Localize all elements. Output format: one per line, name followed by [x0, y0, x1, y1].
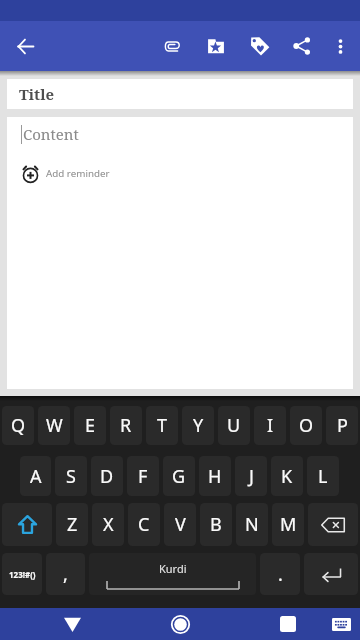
button[interactable]: Symbols — [2, 553, 42, 595]
staticText: K — [281, 464, 293, 489]
button[interactable]: C — [128, 503, 160, 546]
staticText: M — [280, 512, 297, 537]
button[interactable]: Share — [282, 21, 321, 71]
button[interactable]: Shift — [2, 503, 52, 546]
button[interactable]: More options — [321, 21, 360, 71]
staticText: W — [46, 413, 63, 438]
staticText: R — [120, 413, 132, 438]
staticText: S — [66, 464, 76, 489]
button[interactable]: F — [127, 456, 159, 496]
staticText: I — [267, 413, 274, 438]
staticText: F — [138, 464, 148, 489]
staticText: O — [299, 413, 314, 438]
staticText: A — [30, 464, 42, 489]
staticText: G — [172, 464, 186, 489]
button[interactable]: A — [20, 456, 51, 496]
staticText: D — [100, 464, 114, 489]
button[interactable]: L — [307, 456, 339, 496]
staticText: . — [278, 562, 283, 587]
staticText: N — [245, 512, 259, 537]
staticText: Add reminder — [46, 167, 110, 180]
staticText: X — [103, 512, 114, 537]
button[interactable]: K — [271, 456, 303, 496]
staticText: V — [175, 512, 186, 537]
button[interactable]: Content — [7, 117, 353, 389]
staticText: , — [63, 562, 68, 587]
staticText: C — [138, 512, 150, 537]
button[interactable]: E — [74, 406, 106, 445]
staticText: Kurdi — [159, 561, 187, 576]
staticText: Z — [67, 512, 78, 537]
button[interactable]: G — [163, 456, 195, 496]
button[interactable]: Kurdi — [89, 553, 256, 595]
button[interactable]: Hide keyboard — [45, 608, 99, 640]
button[interactable]: Move to folder — [194, 21, 238, 71]
button[interactable]: V — [164, 503, 196, 546]
button[interactable]: S — [55, 456, 87, 496]
button[interactable]: Recents — [261, 608, 315, 640]
button[interactable]: I — [254, 406, 286, 445]
button[interactable]: J — [235, 456, 267, 496]
staticText: P — [337, 413, 348, 438]
button[interactable]: , — [46, 553, 85, 595]
staticText: B — [210, 512, 222, 537]
staticText: L — [318, 464, 328, 489]
button[interactable]: Switch keyboard — [323, 608, 360, 640]
button[interactable]: Add reminder — [7, 162, 126, 185]
button[interactable]: Z — [56, 503, 88, 546]
button[interactable]: N — [236, 503, 268, 546]
button[interactable]: Q — [2, 406, 34, 445]
button[interactable]: T — [146, 406, 178, 445]
button[interactable]: H — [199, 456, 231, 496]
button[interactable]: Y — [182, 406, 214, 445]
staticText: H — [208, 464, 222, 489]
button[interactable]: R — [110, 406, 142, 445]
button[interactable]: Attach — [150, 21, 194, 71]
staticText: J — [249, 464, 254, 489]
staticText: Y — [193, 413, 204, 438]
button[interactable]: Home — [153, 608, 207, 640]
button[interactable]: P — [326, 406, 358, 445]
staticText: 123!#() — [9, 569, 36, 580]
button[interactable]: M — [272, 503, 304, 546]
staticText: Title — [19, 84, 55, 104]
button[interactable]: U — [218, 406, 250, 445]
button[interactable]: W — [38, 406, 70, 445]
button[interactable]: Back — [1, 22, 49, 70]
button[interactable]: O — [290, 406, 322, 445]
staticText: Content — [23, 124, 79, 144]
staticText: T — [157, 413, 168, 438]
button[interactable]: Enter — [304, 553, 358, 595]
button[interactable]: D — [91, 456, 123, 496]
button[interactable]: X — [92, 503, 124, 546]
staticText: Q — [11, 413, 26, 438]
button[interactable]: B — [200, 503, 232, 546]
button[interactable]: Backspace — [308, 503, 358, 546]
button[interactable]: Title — [7, 79, 353, 109]
button[interactable]: . — [260, 553, 300, 595]
button[interactable]: Label — [238, 21, 282, 71]
staticText: U — [227, 413, 241, 438]
staticText: E — [85, 413, 96, 438]
